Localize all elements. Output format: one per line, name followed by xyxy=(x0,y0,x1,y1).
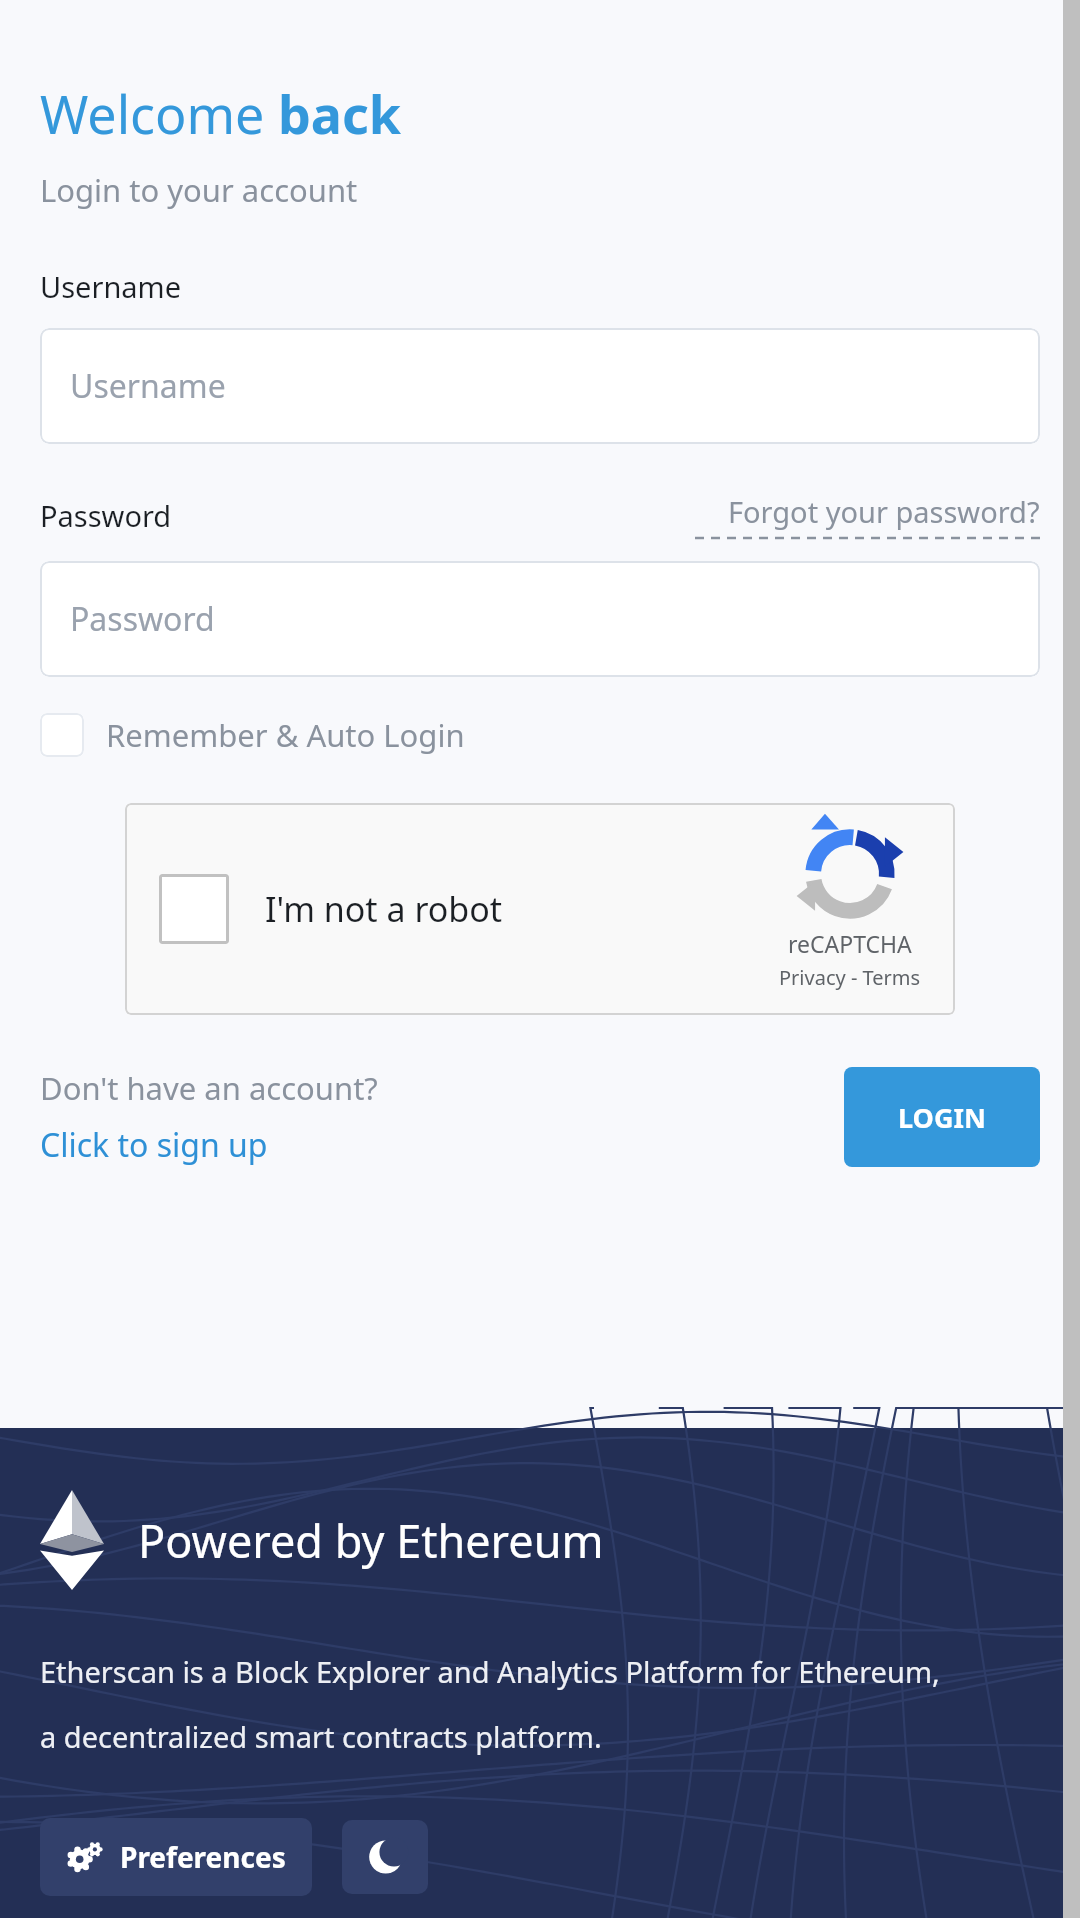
staticText: I'm not a robot xyxy=(265,886,503,932)
button[interactable]: Username xyxy=(40,328,1040,444)
staticText: LOGIN xyxy=(898,1099,986,1136)
button[interactable]: Forgot your password? xyxy=(695,492,1040,539)
staticText: Powered by Ethereum xyxy=(138,1510,604,1571)
button[interactable]: Dark mode xyxy=(342,1820,428,1894)
staticText: Username xyxy=(40,267,182,306)
staticText: Privacy - Terms xyxy=(779,964,921,991)
button[interactable]: Remember & Auto Login xyxy=(40,713,465,757)
staticText: Password xyxy=(70,597,215,641)
staticText: Don't have an account? xyxy=(40,1067,378,1109)
staticText: Password xyxy=(40,496,172,535)
button[interactable]: I'm not a robot xyxy=(125,803,955,1015)
button[interactable]: Click to sign up xyxy=(40,1123,268,1167)
staticText: a decentralized smart contracts platform… xyxy=(40,1717,602,1756)
staticText: Etherscan is a Block Explorer and Analyt… xyxy=(40,1652,940,1691)
staticText: Forgot your password? xyxy=(728,492,1040,531)
staticText: Username xyxy=(70,364,226,408)
staticText: Remember & Auto Login xyxy=(106,714,465,756)
staticText: Login to your account xyxy=(40,169,358,211)
staticText: Click to sign up xyxy=(40,1123,268,1167)
button[interactable]: LOGIN xyxy=(844,1067,1040,1167)
staticText: reCAPTCHA xyxy=(788,928,912,959)
staticText: Preferences xyxy=(120,1838,286,1876)
staticText: Welcome back xyxy=(40,78,402,149)
button[interactable]: Password xyxy=(40,561,1040,677)
button[interactable]: Preferences xyxy=(40,1818,312,1896)
